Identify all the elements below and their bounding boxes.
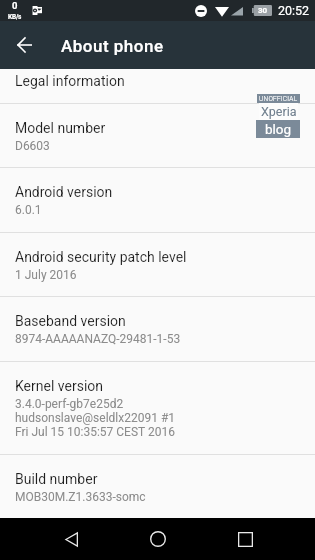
staticText: About phone	[61, 36, 164, 56]
staticText: D6603	[15, 139, 50, 153]
staticText: UNOFFICIAL	[259, 95, 298, 103]
staticText: Android security patch level	[15, 249, 187, 265]
staticText: Fri Jul 15 10:35:57 CEST 2016	[15, 425, 175, 439]
staticText: Build number	[15, 471, 98, 487]
staticText: 30	[258, 6, 268, 15]
button[interactable]: Kernel version	[0, 362, 315, 454]
staticText: 1 July 2016	[15, 268, 77, 282]
staticText: Model number	[15, 120, 106, 136]
staticText: 6.0.1	[15, 203, 42, 217]
staticText: 0	[12, 0, 18, 11]
button[interactable]: Baseband version	[0, 297, 315, 361]
button[interactable]: Android security patch level	[0, 233, 315, 296]
staticText: 3.4.0-perf-gb7e25d2	[15, 397, 124, 411]
staticText: Android version	[15, 184, 113, 200]
staticText: Xperia	[261, 104, 297, 119]
button[interactable]: Recent apps	[223, 518, 267, 560]
button[interactable]: Android version	[0, 168, 315, 232]
staticText: Baseband version	[15, 313, 126, 329]
button[interactable]: Build number	[0, 455, 315, 518]
button[interactable]: Back	[9, 29, 41, 61]
staticText: Kernel version	[15, 378, 104, 394]
button[interactable]: Legal information	[0, 69, 315, 103]
staticText: Legal information	[15, 73, 125, 89]
button[interactable]: Home	[136, 518, 180, 560]
staticText: hudsonslave@seldlx22091 #1	[15, 411, 176, 425]
staticText: KB/s	[8, 13, 22, 21]
staticText: 8974-AAAAANAZQ-29481-1-53	[15, 332, 181, 346]
button[interactable]: Model number	[0, 104, 315, 167]
staticText: MOB30M.Z1.3633-somc	[15, 490, 146, 504]
staticText: 20:52	[278, 3, 310, 18]
button[interactable]: Back	[49, 518, 93, 560]
staticText: blog	[265, 121, 292, 137]
